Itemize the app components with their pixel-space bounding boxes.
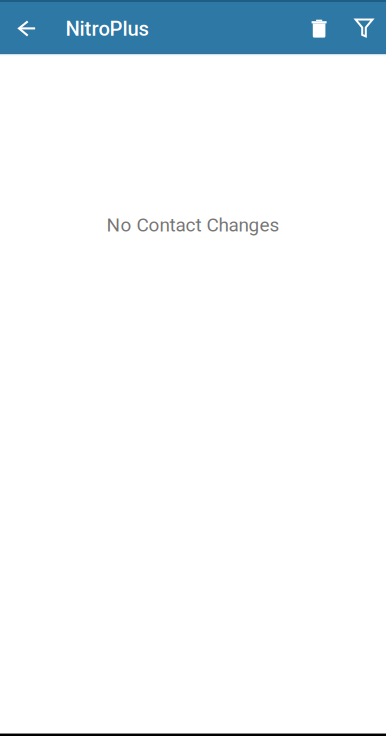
staticText: NitroPlus	[65, 17, 148, 41]
button[interactable]: Delete	[295, 5, 343, 53]
staticText: No Contact Changes	[106, 214, 279, 236]
button[interactable]: Back	[3, 4, 51, 52]
button[interactable]: Filter	[340, 4, 386, 52]
